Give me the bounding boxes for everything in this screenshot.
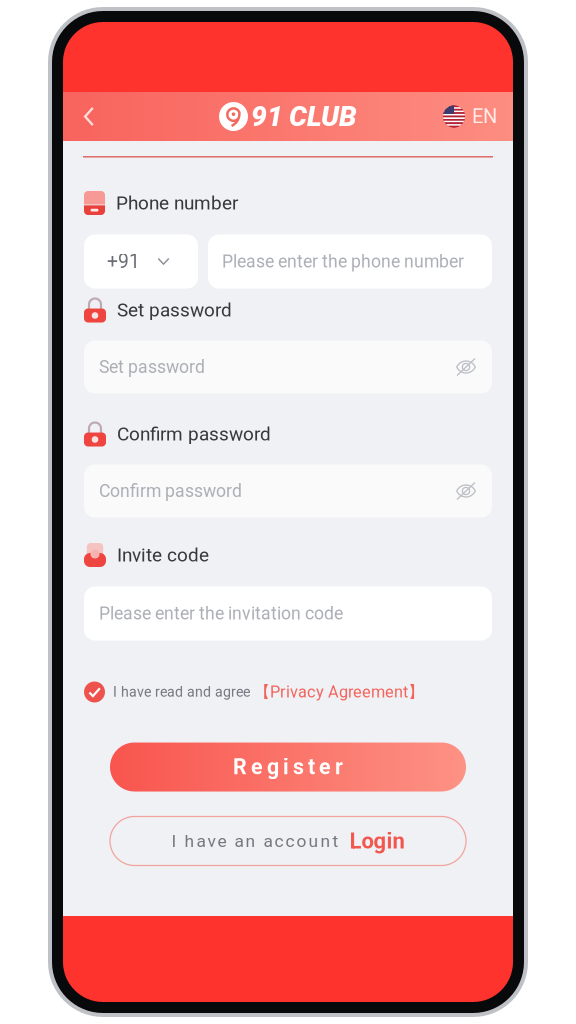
button[interactable]: Confirm password	[84, 464, 492, 517]
staticText: Confirm password	[99, 481, 242, 501]
button[interactable]: I h a v e a n a c c o u n t	[110, 816, 466, 865]
staticText: Set password	[99, 357, 205, 377]
staticText: Phone number	[116, 192, 238, 214]
button[interactable]: Language English	[443, 92, 513, 141]
button[interactable]: Back	[65, 92, 113, 141]
staticText: +91	[107, 250, 140, 273]
button[interactable]: Please enter the phone number	[208, 234, 492, 288]
button[interactable]: Set password	[84, 340, 492, 393]
staticText: I h a v e a n a c c o u n t	[171, 831, 338, 851]
staticText: I have read and agree	[113, 684, 250, 700]
button[interactable]: +91	[84, 234, 198, 288]
staticText: EN	[472, 105, 497, 128]
staticText: Invite code	[117, 544, 209, 566]
button[interactable]: I have read and agree	[84, 678, 492, 705]
staticText: Confirm password	[117, 423, 271, 445]
staticText: 91 CLUB	[251, 100, 357, 133]
staticText: 【Privacy Agreement】	[254, 682, 424, 702]
button[interactable]: Please enter the invitation code	[84, 586, 492, 640]
button[interactable]: R e g i s t e r	[110, 742, 466, 791]
staticText: Set password	[117, 299, 232, 321]
staticText: Please enter the phone number	[222, 251, 464, 272]
staticText: Login	[349, 828, 404, 854]
staticText: Please enter the invitation code	[99, 603, 343, 624]
staticText: R e g i s t e r	[233, 754, 343, 779]
